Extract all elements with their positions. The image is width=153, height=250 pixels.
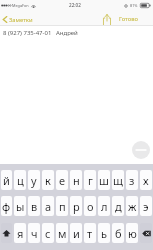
staticText: а — [45, 199, 52, 214]
button[interactable]: Готово — [118, 12, 139, 26]
button[interactable]: и — [70, 223, 82, 243]
staticText: 8 (927) 735-47-01 Андрей — [3, 29, 78, 37]
button[interactable]: э — [140, 196, 152, 216]
button[interactable]: у — [28, 170, 40, 190]
button[interactable]: б — [112, 223, 124, 243]
staticText: э — [143, 199, 149, 214]
staticText: 22:02 — [69, 2, 81, 8]
staticText: ю — [128, 226, 137, 241]
staticText: о — [87, 199, 94, 214]
staticText: и — [73, 226, 80, 241]
button[interactable]: й — [1, 170, 12, 190]
staticText: в — [31, 199, 38, 214]
button[interactable]: ч — [28, 223, 40, 243]
staticText: к — [45, 173, 51, 188]
button[interactable]: з — [126, 170, 138, 190]
staticText: з — [129, 173, 135, 188]
button[interactable]: ю — [126, 223, 138, 243]
staticText: т — [87, 226, 93, 241]
staticText: MegaFon — [12, 3, 29, 8]
staticText: п — [59, 199, 66, 214]
button[interactable]: Share — [101, 13, 112, 27]
staticText: б — [115, 226, 122, 241]
staticText: Готово — [119, 15, 138, 23]
button[interactable]: т — [84, 223, 96, 243]
button[interactable]: л — [98, 196, 110, 216]
staticText: р — [73, 199, 80, 214]
button[interactable]: м — [56, 223, 68, 243]
button[interactable]: я — [14, 223, 26, 243]
button[interactable]: р — [70, 196, 82, 216]
staticText: ы — [16, 199, 25, 214]
button[interactable]: ж — [126, 196, 138, 216]
staticText: ш — [99, 173, 109, 188]
staticText: с — [45, 226, 51, 241]
staticText: й — [3, 173, 10, 188]
staticText: ц — [17, 173, 24, 188]
staticText: м — [58, 226, 67, 241]
staticText: л — [101, 199, 108, 214]
button[interactable]: щ — [112, 170, 124, 190]
staticText: ж — [128, 199, 137, 214]
button[interactable]: н — [70, 170, 82, 190]
button[interactable]: с — [42, 223, 54, 243]
staticText: д — [115, 199, 122, 214]
staticText: я — [17, 226, 24, 241]
button[interactable]: Shift — [1, 223, 12, 243]
staticText: Заметки — [9, 16, 33, 24]
staticText: у — [31, 173, 37, 188]
button[interactable]: ф — [1, 196, 12, 216]
button[interactable]: ь — [98, 223, 110, 243]
button[interactable]: ы — [14, 196, 26, 216]
button[interactable]: о — [84, 196, 96, 216]
button[interactable]: п — [56, 196, 68, 216]
staticText: ф — [2, 199, 11, 214]
button[interactable]: е — [56, 170, 68, 190]
button[interactable]: к — [42, 170, 54, 190]
button[interactable]: ш — [98, 170, 110, 190]
button[interactable]: Hide keyboard — [132, 141, 150, 159]
button[interactable]: а — [42, 196, 54, 216]
button[interactable]: в — [28, 196, 40, 216]
staticText: ь — [101, 226, 107, 241]
button[interactable]: д — [112, 196, 124, 216]
staticText: 81% — [130, 3, 138, 8]
staticText: щ — [113, 173, 123, 188]
button[interactable]: Backspace — [140, 223, 152, 243]
button[interactable]: Заметки — [2, 15, 33, 24]
button[interactable]: х — [140, 170, 152, 190]
button[interactable]: ц — [14, 170, 26, 190]
staticText: е — [59, 173, 66, 188]
staticText: г — [88, 173, 93, 188]
button[interactable]: г — [84, 170, 96, 190]
staticText: ч — [31, 226, 38, 241]
staticText: х — [143, 173, 149, 188]
staticText: н — [73, 173, 80, 188]
